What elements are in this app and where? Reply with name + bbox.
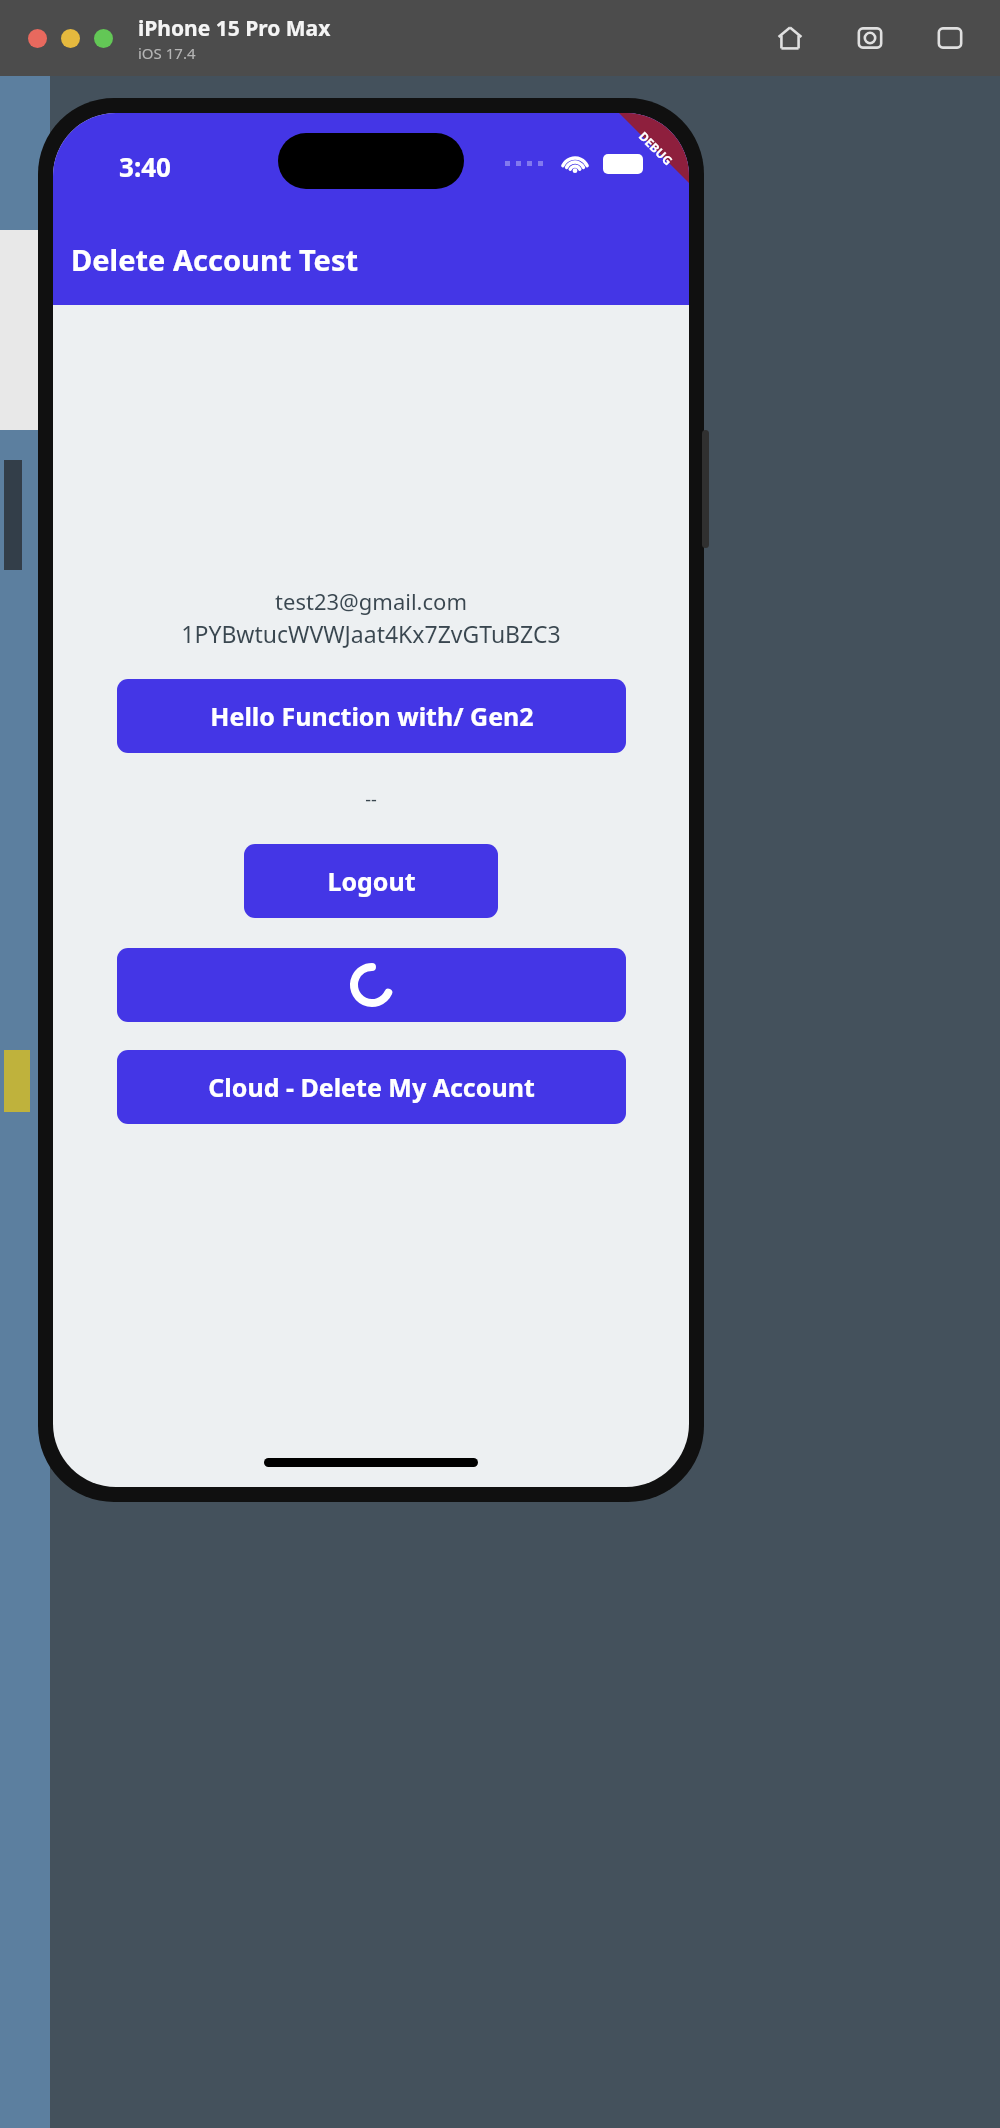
button[interactable]: Logout: [244, 844, 498, 918]
button[interactable]: Cloud - Delete My Account: [117, 1050, 626, 1124]
staticText: test23@gmail.com: [275, 586, 467, 616]
staticText: --: [365, 787, 377, 812]
button[interactable]: Hello Function with/ Gen2: [117, 679, 626, 753]
staticText: Delete Account Test: [71, 240, 359, 279]
staticText: Cloud - Delete My Account: [208, 1070, 535, 1104]
staticText: iOS 17.4: [138, 43, 196, 63]
staticText: Logout: [327, 864, 416, 898]
button[interactable]: Screenshot: [850, 18, 890, 58]
staticText: 3:40: [119, 149, 171, 184]
staticText: Hello Function with/ Gen2: [210, 699, 534, 733]
button[interactable]: Record screen: [930, 18, 970, 58]
staticText: iPhone 15 Pro Max: [138, 14, 331, 43]
staticText: 1PYBwtucWVWJaat4Kx7ZvGTuBZC3: [181, 618, 561, 649]
button[interactable]: Home: [770, 18, 810, 58]
button[interactable]: Loading: [117, 948, 626, 1022]
staticText: DEBUG: [635, 127, 676, 168]
